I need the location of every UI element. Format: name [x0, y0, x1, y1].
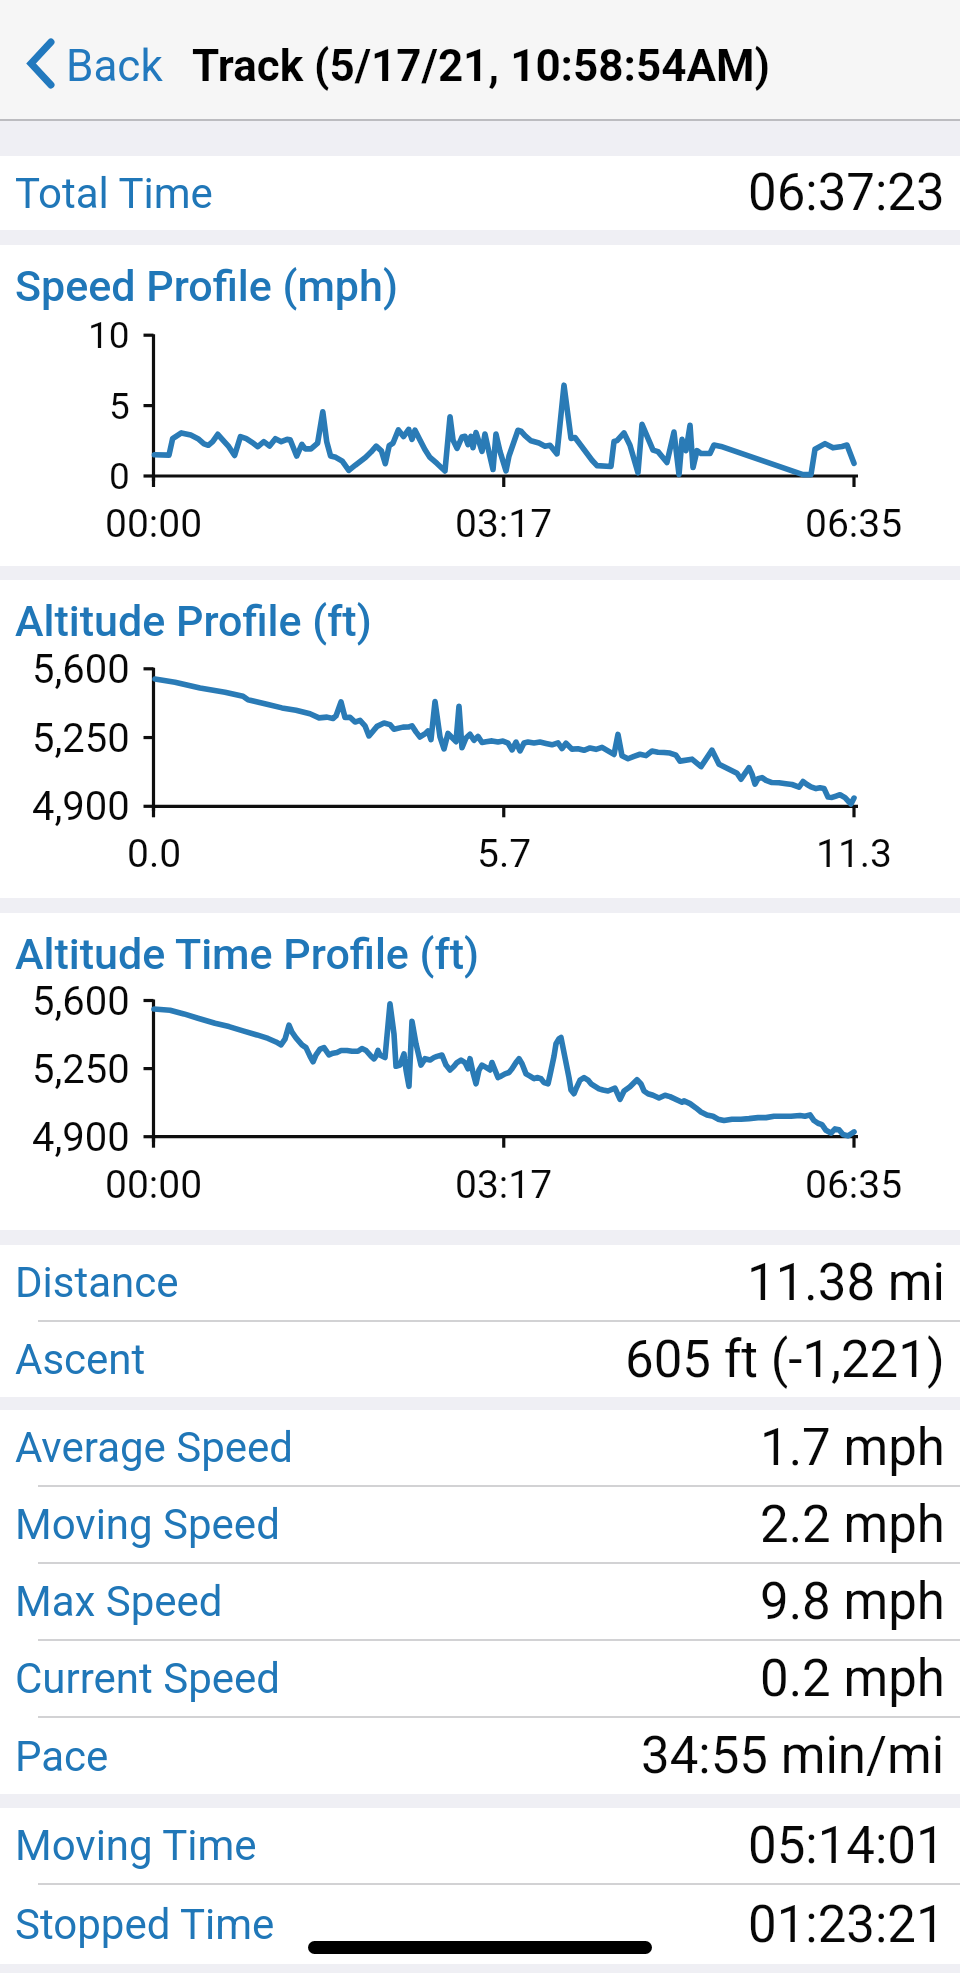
staticText: Moving Speed: [15, 1500, 280, 1549]
staticText: 1.7 mph: [760, 1418, 945, 1478]
staticText: 11.3: [816, 831, 893, 877]
staticText: 01:23:21: [748, 1895, 945, 1955]
staticText: 00:00: [105, 1162, 203, 1208]
staticText: 5,600: [32, 646, 130, 693]
staticText: Speed Profile (mph): [15, 261, 398, 311]
staticText: 5: [109, 385, 130, 428]
staticText: 5,250: [32, 715, 130, 762]
button[interactable]: Pace: [0, 1718, 960, 1794]
staticText: Pace: [15, 1732, 109, 1781]
button[interactable]: Moving Speed: [0, 1487, 960, 1562]
staticText: 2.2 mph: [760, 1495, 945, 1555]
staticText: 05:14:01: [748, 1816, 945, 1876]
staticText: Total Time: [15, 169, 213, 218]
staticText: 03:17: [455, 501, 553, 547]
button[interactable]: Ascent: [0, 1322, 960, 1397]
staticText: Average Speed: [15, 1423, 294, 1472]
staticText: 03:17: [455, 1162, 553, 1208]
staticText: 4,900: [32, 1114, 130, 1161]
button[interactable]: Back: [10, 10, 180, 110]
staticText: Back: [66, 40, 163, 92]
staticText: 0.2 mph: [760, 1649, 945, 1709]
staticText: 5,250: [32, 1046, 130, 1093]
staticText: Current Speed: [15, 1654, 280, 1703]
staticText: 0.0: [127, 831, 182, 877]
staticText: Stopped Time: [15, 1900, 275, 1949]
button[interactable]: Average Speed: [0, 1410, 960, 1485]
button[interactable]: Total Time: [0, 156, 960, 230]
staticText: 00:00: [105, 501, 203, 547]
button[interactable]: Current Speed: [0, 1641, 960, 1716]
staticText: 34:55 min/mi: [641, 1726, 945, 1786]
staticText: Track (5/17/21, 10:58:54AM): [192, 40, 770, 92]
staticText: Ascent: [15, 1335, 146, 1384]
staticText: 06:35: [805, 1162, 903, 1208]
staticText: 10: [88, 314, 130, 357]
staticText: Max Speed: [15, 1577, 223, 1626]
staticText: Altitude Time Profile (ft): [15, 929, 480, 979]
staticText: 06:35: [805, 501, 903, 547]
button[interactable]: Stopped Time: [0, 1885, 960, 1964]
button[interactable]: Max Speed: [0, 1564, 960, 1639]
staticText: Distance: [15, 1258, 179, 1307]
button[interactable]: Distance: [0, 1245, 960, 1320]
staticText: 605 ft (-1,221): [625, 1330, 945, 1390]
other: Home indicator: [308, 1941, 652, 1954]
staticText: Altitude Profile (ft): [15, 596, 372, 646]
staticText: 9.8 mph: [760, 1572, 945, 1632]
staticText: 0: [109, 455, 130, 498]
staticText: 11.38 mi: [747, 1253, 945, 1313]
button[interactable]: Moving Time: [0, 1808, 960, 1883]
staticText: 06:37:23: [748, 163, 945, 223]
staticText: Moving Time: [15, 1821, 257, 1870]
staticText: 4,900: [32, 783, 130, 830]
staticText: 5,600: [32, 978, 130, 1025]
staticText: 5.7: [477, 831, 532, 877]
